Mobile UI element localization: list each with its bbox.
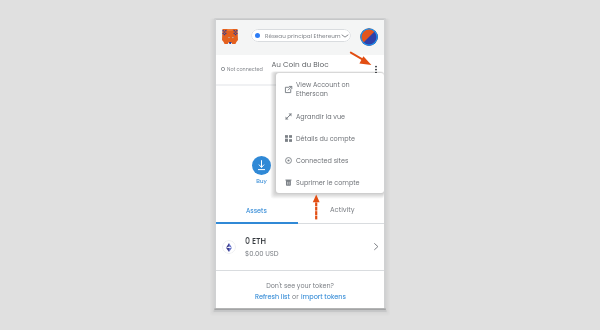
button[interactable]: Agrandir la vue bbox=[276, 105, 384, 127]
staticText: Suprimer le compte bbox=[296, 178, 360, 187]
staticText: Activity bbox=[330, 205, 355, 215]
staticText: Refresh list bbox=[255, 292, 290, 301]
button[interactable]: 0 ETH bbox=[216, 225, 384, 270]
staticText: Au Coin du Bloc bbox=[216, 59, 384, 69]
button[interactable]: Suprimer le compte bbox=[276, 171, 384, 193]
button[interactable]: Account avatar bbox=[360, 28, 378, 46]
button[interactable]: Détails du compte bbox=[276, 127, 384, 149]
staticText: Not connected bbox=[227, 66, 263, 72]
button[interactable]: Connected sites bbox=[276, 149, 384, 171]
staticText: Réseau principal Ethereum bbox=[265, 32, 341, 40]
staticText: Détails du compte bbox=[296, 134, 356, 143]
button[interactable]: Account options bbox=[371, 64, 381, 76]
staticText: or bbox=[292, 292, 299, 301]
button[interactable]: Refresh list bbox=[255, 292, 290, 301]
button[interactable]: Assets bbox=[216, 199, 298, 221]
button[interactable]: View Account on Etherscan bbox=[276, 73, 384, 105]
staticText: Agrandir la vue bbox=[296, 112, 345, 121]
staticText: $0.00 USD bbox=[245, 249, 279, 259]
button[interactable]: Buy bbox=[246, 154, 277, 185]
staticText: Buy bbox=[252, 177, 271, 185]
button[interactable]: Activity bbox=[301, 199, 385, 221]
staticText: View Account on Etherscan bbox=[296, 80, 350, 98]
staticText: Don't see your token? bbox=[216, 281, 384, 290]
staticText: 0 ETH bbox=[245, 236, 267, 247]
staticText: import tokens bbox=[301, 292, 346, 301]
button[interactable]: Réseau principal Ethereum bbox=[251, 29, 351, 42]
staticText: Assets bbox=[246, 206, 267, 215]
button[interactable]: import tokens bbox=[301, 292, 346, 301]
staticText: Connected sites bbox=[296, 156, 349, 165]
